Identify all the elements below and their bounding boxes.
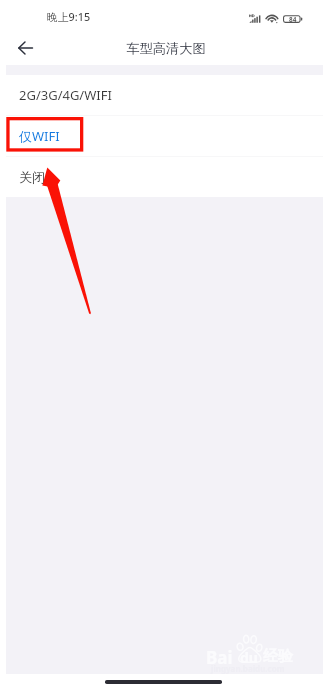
- staticText: 经验: [263, 647, 293, 666]
- button[interactable]: Back: [10, 32, 42, 64]
- staticText: Bai: [206, 646, 233, 669]
- staticText: 84: [289, 15, 297, 24]
- staticText: du: [240, 648, 258, 667]
- staticText: 车型高清大图: [126, 40, 206, 57]
- staticText: 关闭: [19, 169, 45, 185]
- staticText: 仅WIFI: [19, 127, 60, 145]
- button[interactable]: 关闭: [0, 157, 323, 197]
- button[interactable]: 2G/3G/4G/WIFI: [0, 75, 323, 115]
- staticText: 晚上9:15: [47, 9, 91, 24]
- staticText: 2G/3G/4G/WIFI: [19, 86, 112, 104]
- button[interactable]: 仅WIFI: [0, 116, 323, 156]
